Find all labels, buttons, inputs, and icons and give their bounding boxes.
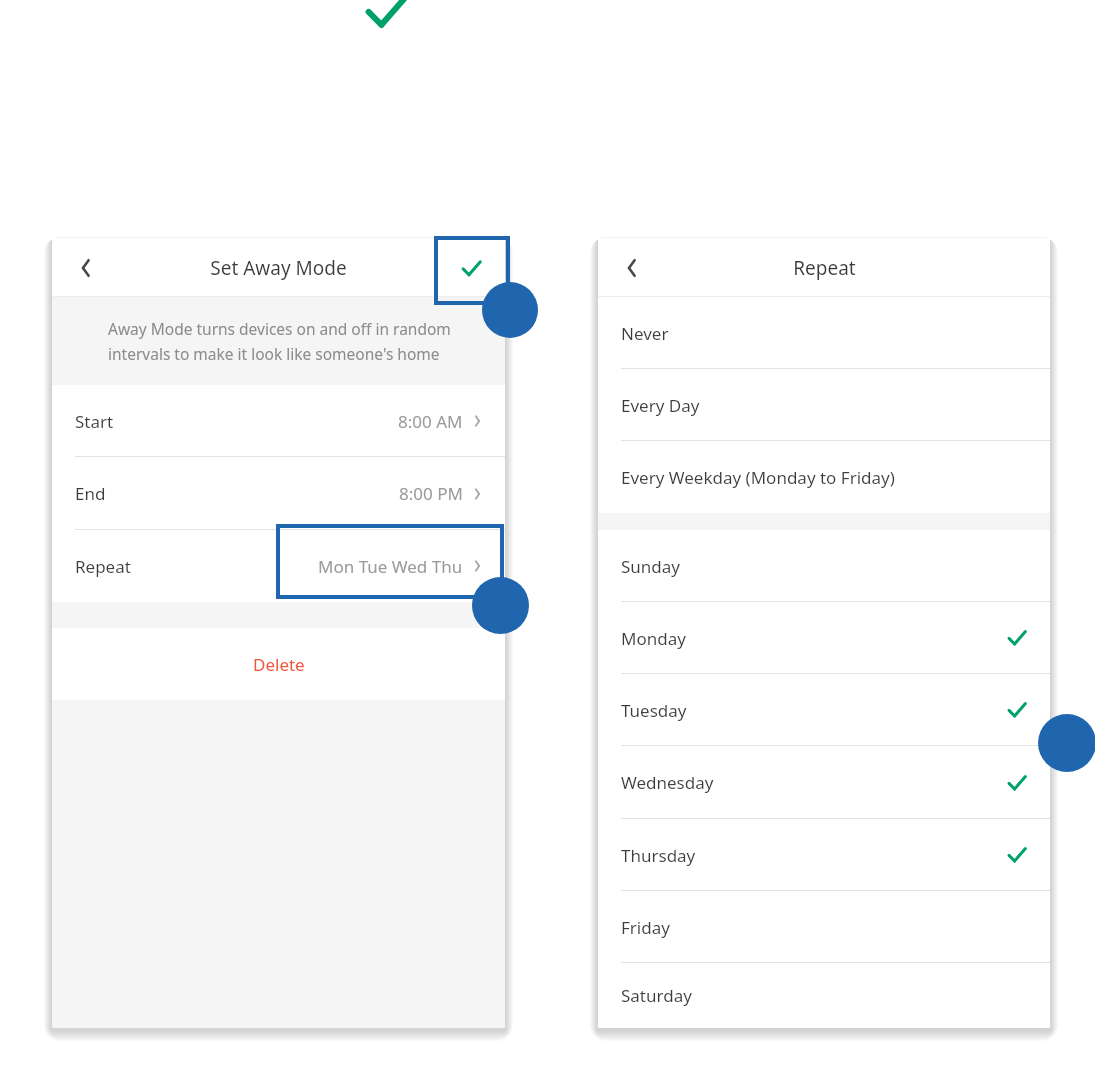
button[interactable]: Saturday [598, 963, 1050, 1028]
staticText: Tuesday [621, 699, 687, 722]
button[interactable]: Never [598, 297, 1050, 369]
button[interactable]: Friday [598, 891, 1050, 963]
staticText: End [75, 482, 106, 505]
staticText: Saturday [621, 984, 692, 1007]
button[interactable]: Repeat [52, 530, 505, 602]
staticText: Delete [253, 653, 305, 676]
button[interactable]: Start [52, 385, 505, 457]
staticText: Start [75, 410, 114, 433]
button[interactable]: Thursday [598, 819, 1050, 891]
staticText: 8:00 AM [398, 410, 463, 433]
staticText: Away Mode turns devices on and off in ra… [108, 318, 451, 364]
staticText: Sunday [621, 555, 681, 578]
staticText: Repeat [75, 555, 131, 578]
staticText: Thursday [621, 844, 696, 867]
button[interactable]: Delete [52, 628, 505, 700]
button[interactable]: Sunday [598, 530, 1050, 602]
staticText: Every Weekday (Monday to Friday) [621, 466, 895, 489]
button[interactable]: Every Weekday (Monday to Friday) [598, 441, 1050, 513]
staticText: Repeat [793, 255, 856, 281]
button[interactable]: Confirm [449, 246, 493, 290]
staticText: Set Away Mode [210, 255, 347, 281]
button[interactable]: Wednesday [598, 746, 1050, 819]
staticText: 8:00 PM [399, 482, 463, 505]
staticText: Mon Tue Wed Thu [318, 555, 463, 578]
button[interactable]: Monday [598, 602, 1050, 674]
button[interactable]: End [52, 457, 505, 530]
button[interactable]: Back [64, 246, 108, 290]
staticText: Monday [621, 627, 686, 650]
staticText: Every Day [621, 394, 700, 417]
button[interactable]: Back [610, 246, 654, 290]
button[interactable]: Every Day [598, 369, 1050, 441]
staticText: Wednesday [621, 771, 714, 794]
staticText: Friday [621, 916, 670, 939]
button[interactable]: Tuesday [598, 674, 1050, 746]
staticText: Never [621, 322, 669, 345]
